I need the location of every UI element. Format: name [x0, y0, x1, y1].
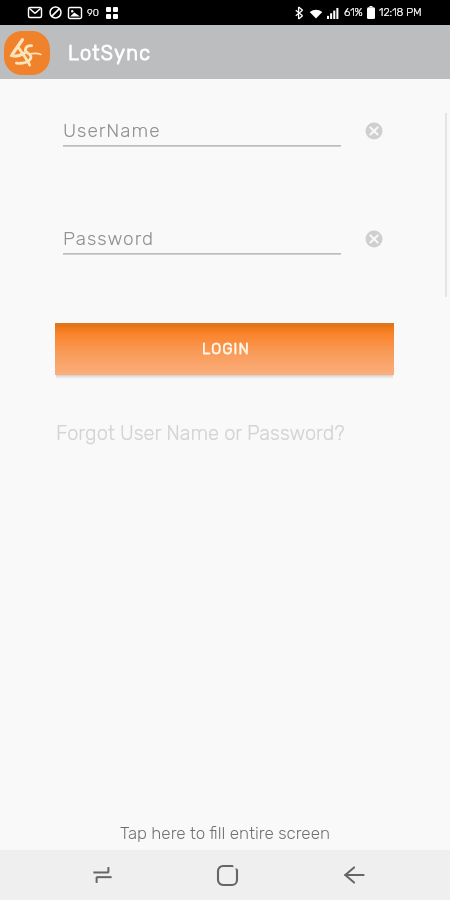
staticText: 12:18 PM — [379, 6, 422, 19]
button[interactable]: Forgot User Name or Password? — [56, 421, 345, 445]
button[interactable]: Clear text — [365, 230, 383, 248]
staticText: 90 — [87, 7, 99, 19]
staticText: 61% — [344, 6, 363, 19]
button[interactable]: LotSync logo — [4, 31, 50, 75]
staticText: Tap here to fill entire screen — [0, 823, 450, 843]
button[interactable]: Home — [189, 850, 266, 900]
staticText: Password — [63, 227, 155, 250]
button[interactable]: Back — [316, 850, 393, 900]
staticText: LOGIN — [202, 340, 250, 358]
staticText: LotSync — [68, 41, 152, 65]
button[interactable]: Recent apps — [64, 850, 141, 900]
button[interactable]: Clear text — [365, 122, 383, 140]
button[interactable]: LOGIN — [55, 323, 394, 375]
staticText: UserName — [63, 119, 161, 142]
